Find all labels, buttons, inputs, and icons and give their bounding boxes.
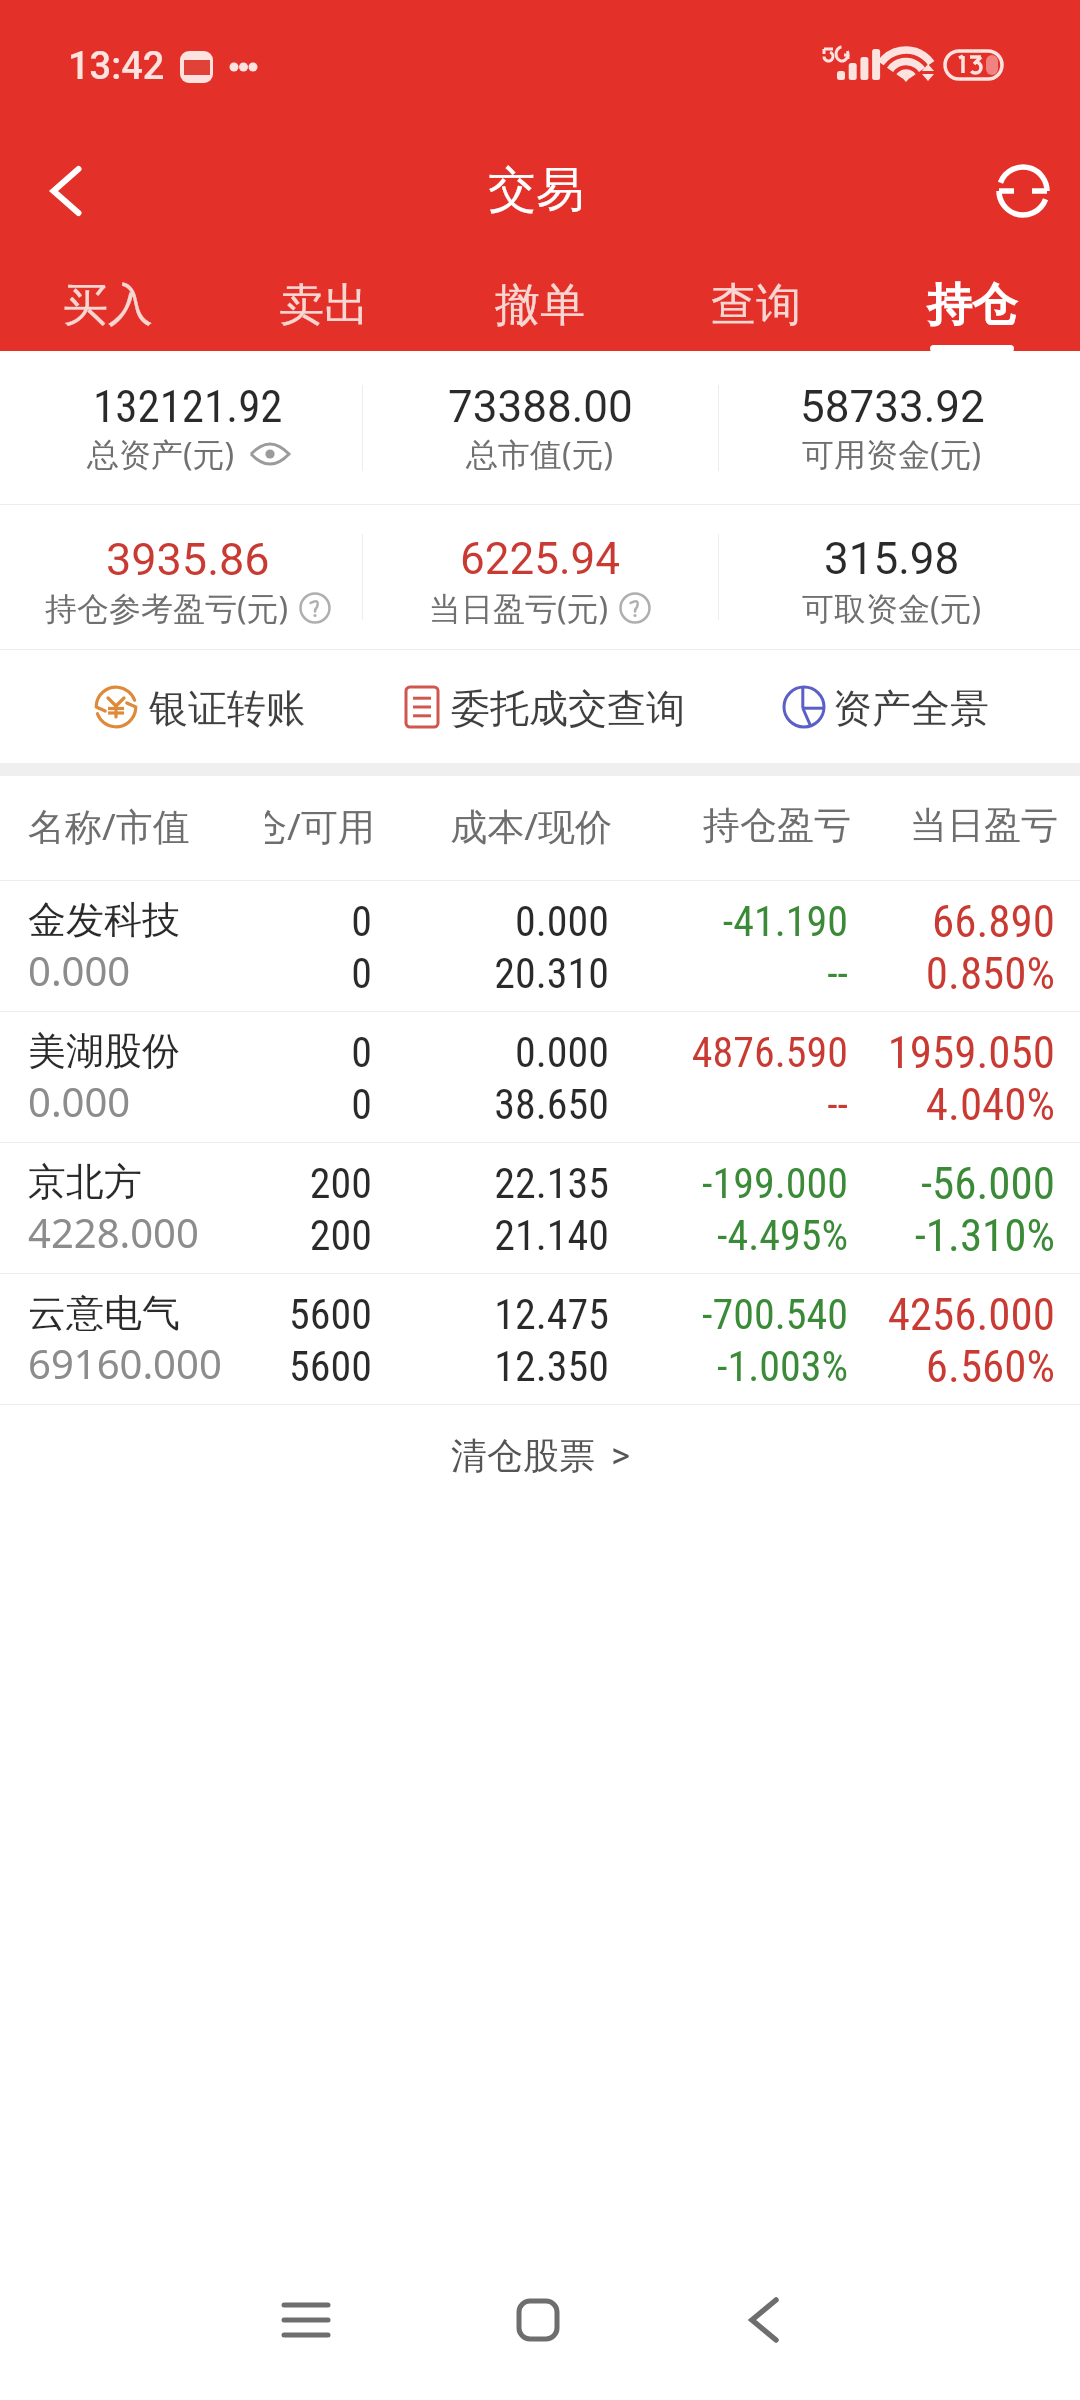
staticText: 持仓参考盈亏(元) (45, 586, 289, 630)
staticText: 58733.92 (800, 381, 985, 433)
staticText: -1.003% (716, 1342, 848, 1391)
button[interactable]: 委托成交查询 (380, 650, 700, 763)
staticText: 0.000 (28, 943, 131, 997)
staticText: -- (827, 1080, 848, 1129)
staticText: 可取资金(元) (802, 586, 982, 630)
staticText: 持仓盈亏 (612, 802, 851, 849)
button[interactable]: 买入 (0, 248, 216, 352)
button[interactable]: Recent apps (246, 2260, 366, 2380)
staticText: 38.650 (494, 1080, 609, 1129)
staticText: 总资产(元) (87, 432, 235, 476)
staticText: 200 (309, 1211, 372, 1260)
staticText: 美湖股份 (28, 1027, 180, 1075)
button[interactable]: 清仓股票 (0, 1405, 1080, 1505)
staticText: 查询 (711, 277, 801, 334)
button[interactable]: 持仓 (864, 248, 1080, 352)
button[interactable]: Back (704, 2260, 824, 2380)
staticText: 0.000 (514, 897, 609, 946)
staticText: 委托成交查询 (451, 684, 685, 733)
staticText: 卖出 (279, 277, 369, 334)
button[interactable]: Refresh (983, 151, 1063, 231)
staticText: 京北方 (28, 1158, 142, 1206)
staticText: 可用资金(元) (802, 432, 982, 476)
button[interactable]: 云意电气 (0, 1274, 1080, 1405)
staticText: 132121.92 (93, 380, 283, 433)
staticText: 12.475 (494, 1290, 609, 1339)
staticText: 21.140 (494, 1211, 609, 1260)
staticText: 清仓股票 (451, 1433, 595, 1478)
button[interactable]: 查询 (648, 248, 864, 352)
staticText: 5600 (289, 1342, 372, 1391)
staticText: 4.040% (925, 1078, 1055, 1131)
button[interactable]: 银证转账 (60, 650, 330, 763)
staticText: 云意电气 (28, 1289, 180, 1337)
staticText: 资产全景 (833, 684, 989, 733)
staticText: -1.310% (914, 1209, 1055, 1262)
staticText: 总市值(元) (466, 432, 614, 476)
staticText: 0.000 (514, 1028, 609, 1077)
staticText: 20.310 (494, 949, 609, 998)
staticText: 200 (309, 1159, 372, 1208)
staticText: 4876.590 (691, 1028, 848, 1077)
staticText: 0 (351, 897, 372, 946)
staticText: 0.850% (925, 947, 1055, 1000)
button[interactable]: Back (26, 151, 106, 231)
staticText: 买入 (63, 277, 153, 334)
staticText: 5600 (289, 1290, 372, 1339)
button[interactable]: 卖出 (216, 248, 432, 352)
staticText: 成本/现价 (375, 800, 612, 851)
staticText: 0.000 (28, 1074, 131, 1128)
staticText: 73388.00 (448, 381, 633, 433)
staticText: 66.890 (932, 895, 1055, 948)
staticText: -700.540 (702, 1290, 848, 1339)
staticText: 交易 (488, 160, 584, 220)
button[interactable]: 美湖股份 (0, 1012, 1080, 1143)
staticText: 6.560% (925, 1340, 1055, 1393)
staticText: -56.000 (920, 1157, 1055, 1210)
button[interactable]: 资产全景 (760, 650, 1010, 763)
staticText: 金发科技 (28, 896, 180, 944)
staticText: 名称/市值 (28, 800, 190, 851)
staticText: -199.000 (702, 1159, 848, 1208)
button[interactable]: 撤单 (432, 248, 648, 352)
staticText: 当日盈亏 (851, 802, 1058, 849)
button[interactable]: Home (478, 2260, 598, 2380)
staticText: -- (827, 949, 848, 998)
staticText: 4228.000 (28, 1205, 199, 1259)
staticText: 持仓 (927, 277, 1017, 334)
staticText: -4.495% (716, 1211, 848, 1260)
staticText: 撤单 (495, 277, 585, 334)
staticText: 4256.000 (887, 1288, 1055, 1341)
staticText: 13:42 (68, 44, 165, 89)
staticText: 315.98 (824, 533, 960, 585)
staticText: > (611, 1435, 630, 1477)
button[interactable]: 金发科技 (0, 881, 1080, 1012)
staticText: 0 (351, 1028, 372, 1077)
staticText: 0 (351, 949, 372, 998)
staticText: 22.135 (494, 1159, 609, 1208)
staticText: 持仓/可用 (265, 800, 375, 851)
staticText: 1959.050 (887, 1026, 1055, 1079)
staticText: 69160.000 (28, 1336, 222, 1390)
staticText: 12.350 (494, 1342, 609, 1391)
staticText: 6225.94 (460, 533, 620, 585)
staticText: 3935.86 (106, 533, 270, 586)
staticText: 当日盈亏(元) (429, 586, 609, 630)
staticText: 银证转账 (149, 684, 305, 733)
staticText: -41.190 (722, 897, 848, 946)
staticText: 0 (351, 1080, 372, 1129)
button[interactable]: 京北方 (0, 1143, 1080, 1274)
